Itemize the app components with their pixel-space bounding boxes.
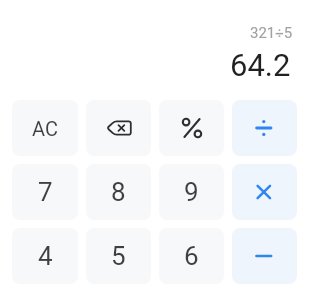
staticText: 7 <box>38 177 53 207</box>
staticText: 8 <box>111 177 126 207</box>
button[interactable]: AC <box>12 100 78 156</box>
button[interactable]: 8 <box>86 164 151 220</box>
staticText: 6 <box>184 241 199 271</box>
button[interactable] <box>232 164 297 220</box>
button[interactable]: 9 <box>159 164 224 220</box>
button[interactable] <box>232 100 297 156</box>
staticText: 5 <box>111 241 126 271</box>
button[interactable] <box>159 100 224 156</box>
staticText: 4 <box>38 241 53 271</box>
staticText: 321÷5 <box>250 24 293 42</box>
button[interactable] <box>232 228 297 284</box>
button[interactable] <box>86 100 151 156</box>
button[interactable]: 5 <box>86 228 151 284</box>
staticText: 9 <box>184 177 199 207</box>
button[interactable]: 4 <box>12 228 78 284</box>
staticText: 64.2 <box>230 47 291 83</box>
button[interactable]: 7 <box>12 164 78 220</box>
staticText: AC <box>32 117 58 140</box>
button[interactable]: 6 <box>159 228 224 284</box>
